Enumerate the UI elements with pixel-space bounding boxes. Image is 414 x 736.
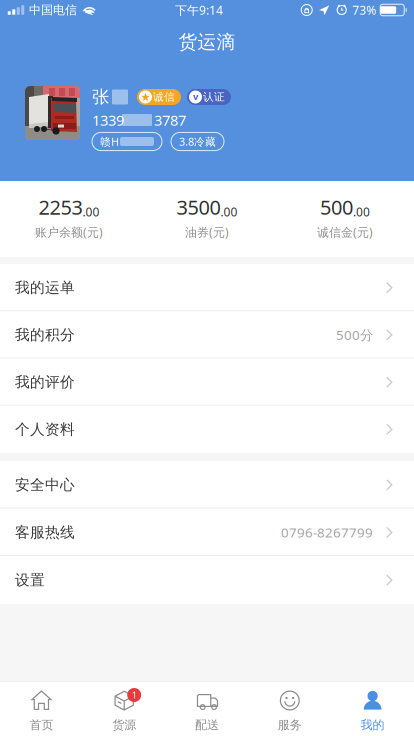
staticText: 1 bbox=[132, 689, 137, 701]
staticText: .00 bbox=[220, 204, 237, 220]
staticText: 0796-8267799 bbox=[281, 523, 373, 541]
staticText: .00 bbox=[353, 204, 370, 220]
button[interactable]: 配送 bbox=[166, 681, 248, 736]
button[interactable]: 客服热线 bbox=[0, 509, 414, 556]
staticText: 设置 bbox=[15, 571, 45, 589]
staticText: 认证 bbox=[203, 90, 225, 103]
button[interactable]: 我的运单 bbox=[0, 264, 414, 311]
staticText: 首页 bbox=[29, 718, 53, 732]
button[interactable]: 我的积分 bbox=[0, 311, 414, 358]
staticText: 服务 bbox=[278, 718, 302, 732]
button[interactable]: 我的评价 bbox=[0, 358, 414, 406]
staticText: 2253 bbox=[38, 194, 82, 220]
staticText: 我的评价 bbox=[15, 373, 75, 391]
staticText: 配送 bbox=[195, 718, 219, 732]
staticText: 3500 bbox=[176, 194, 220, 220]
staticText: 中国电信 bbox=[29, 3, 77, 17]
staticText: 账户余额(元) bbox=[35, 224, 103, 240]
staticText: v bbox=[193, 90, 198, 103]
staticText: 我的运单 bbox=[15, 279, 75, 297]
staticText: 油券(元) bbox=[185, 224, 229, 240]
staticText: 客服热线 bbox=[15, 523, 75, 541]
staticText: .00 bbox=[82, 204, 99, 220]
button[interactable]: 1 bbox=[83, 681, 166, 736]
staticText: 货运滴 bbox=[178, 30, 235, 53]
button[interactable]: 个人资料 bbox=[0, 406, 414, 453]
staticText: 500分 bbox=[336, 326, 373, 344]
staticText: 安全中心 bbox=[15, 476, 75, 494]
staticText: 500 bbox=[320, 194, 353, 220]
button[interactable]: 我的 bbox=[331, 681, 414, 736]
staticText: 赣H bbox=[100, 134, 119, 149]
staticText: 个人资料 bbox=[15, 420, 75, 438]
staticText: 3.8冷藏 bbox=[179, 134, 216, 149]
staticText: 下午9:14 bbox=[175, 2, 223, 18]
staticText: 诚信 bbox=[153, 90, 175, 103]
staticText: 我的 bbox=[361, 718, 385, 732]
staticText: 1339 bbox=[92, 110, 124, 130]
button[interactable]: 服务 bbox=[248, 681, 331, 736]
button[interactable]: 设置 bbox=[0, 556, 414, 604]
staticText: 我的积分 bbox=[15, 326, 75, 344]
button[interactable]: 首页 bbox=[0, 681, 83, 736]
staticText: 张 bbox=[92, 86, 109, 108]
button[interactable]: 安全中心 bbox=[0, 461, 414, 509]
staticText: 货源 bbox=[112, 718, 136, 732]
staticText: 诚信金(元) bbox=[317, 224, 373, 240]
staticText: 73% bbox=[352, 2, 376, 18]
staticText: 3787 bbox=[154, 110, 186, 130]
